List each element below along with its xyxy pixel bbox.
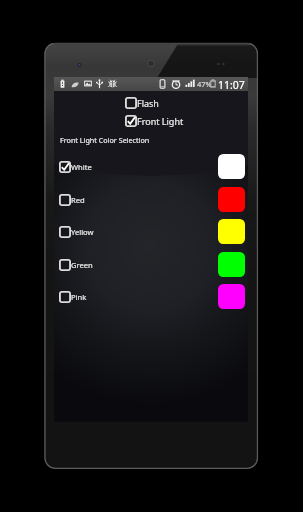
button[interactable]: Yellow xyxy=(54,215,248,248)
button[interactable]: Front Light xyxy=(125,115,184,127)
staticText: Red xyxy=(71,195,85,205)
button[interactable]: Red xyxy=(54,183,248,216)
button[interactable]: White xyxy=(54,150,248,183)
staticText: Front Light xyxy=(137,115,184,127)
staticText: Yellow xyxy=(71,227,94,237)
button[interactable]: Green xyxy=(54,248,248,281)
staticText: Green xyxy=(71,260,93,270)
staticText: White xyxy=(71,162,92,172)
button[interactable]: Flash xyxy=(125,97,159,109)
staticText: Front Light Color Selection xyxy=(60,135,150,145)
button[interactable]: Pink xyxy=(54,280,248,313)
staticText: Flash xyxy=(137,97,159,109)
staticText: 11:07 xyxy=(218,78,245,92)
staticText: Pink xyxy=(71,292,87,302)
staticText: 47% xyxy=(197,79,212,89)
